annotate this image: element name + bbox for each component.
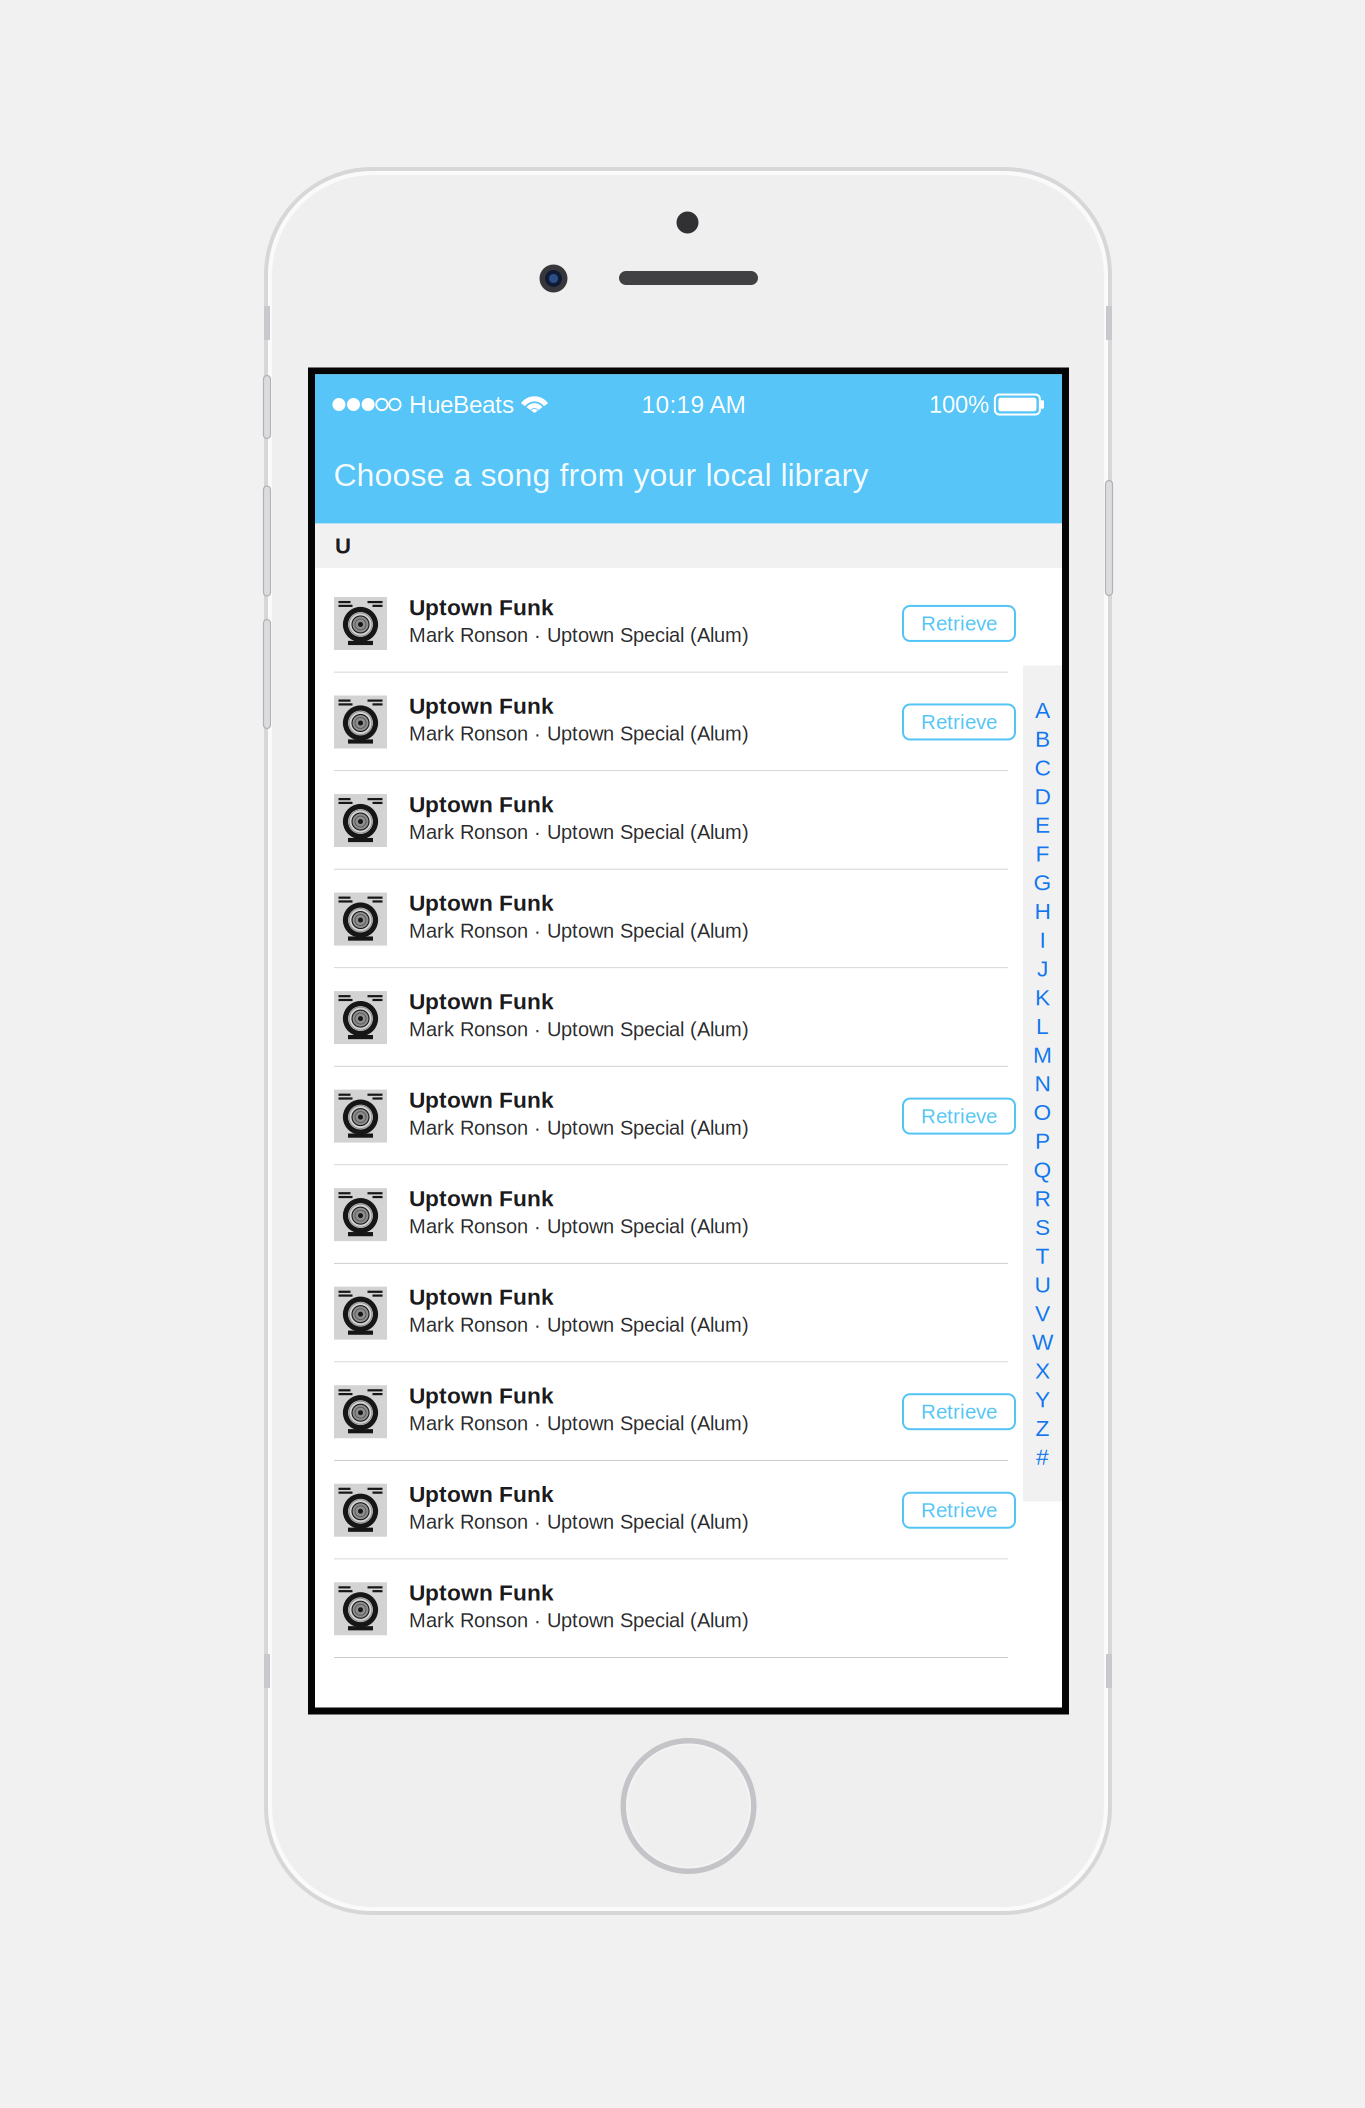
button[interactable]: Uptown Funk xyxy=(315,771,1062,870)
staticText: B xyxy=(1035,726,1050,751)
staticText: Mark Ronson · Uptown Special (Alum) xyxy=(409,1215,749,1237)
staticText: T xyxy=(1035,1243,1049,1268)
staticText: Choose a song from your local library xyxy=(333,457,868,493)
staticText: HueBeats xyxy=(409,391,514,418)
staticText: H xyxy=(1034,898,1050,924)
staticText: Retrieve xyxy=(921,711,997,733)
staticText: 10:19 AM xyxy=(641,391,745,418)
staticText: Mark Ronson · Uptown Special (Alum) xyxy=(409,1314,749,1336)
staticText: Mark Ronson · Uptown Special (Alum) xyxy=(409,1117,749,1139)
staticText: Q xyxy=(1033,1157,1051,1182)
button[interactable]: Alphabet index xyxy=(1023,665,1062,1501)
staticText: Retrieve xyxy=(921,612,997,635)
staticText: Retrieve xyxy=(921,1499,997,1522)
staticText: O xyxy=(1033,1100,1051,1125)
staticText: K xyxy=(1035,985,1050,1010)
staticText: Uptown Funk xyxy=(409,890,554,915)
button[interactable]: Uptown Funk xyxy=(315,870,1062,968)
staticText: Uptown Funk xyxy=(409,595,554,620)
staticText: N xyxy=(1034,1071,1050,1096)
button[interactable]: Uptown Funk xyxy=(315,673,1062,771)
staticText: E xyxy=(1035,812,1050,838)
button[interactable]: Retrieve xyxy=(903,704,1015,739)
staticText: Uptown Funk xyxy=(409,1186,554,1211)
button[interactable]: Retrieve xyxy=(903,1394,1015,1429)
staticText: Uptown Funk xyxy=(409,693,554,718)
button[interactable]: Uptown Funk xyxy=(315,1165,1062,1264)
staticText: # xyxy=(1036,1444,1049,1469)
button[interactable]: Uptown Funk xyxy=(315,1559,1062,1658)
staticText: Z xyxy=(1035,1415,1049,1441)
staticText: S xyxy=(1035,1214,1050,1240)
button[interactable]: Retrieve xyxy=(903,1493,1015,1528)
staticText: X xyxy=(1035,1358,1050,1383)
staticText: P xyxy=(1035,1128,1050,1154)
staticText: 100% xyxy=(929,391,989,418)
button[interactable]: Uptown Funk xyxy=(315,1067,1062,1165)
staticText: W xyxy=(1032,1329,1053,1355)
button[interactable]: Uptown Funk xyxy=(315,968,1062,1067)
button[interactable]: Retrieve xyxy=(903,1099,1015,1134)
staticText: U xyxy=(335,533,351,558)
staticText: Mark Ronson · Uptown Special (Alum) xyxy=(409,1412,749,1434)
staticText: F xyxy=(1035,841,1049,866)
staticText: Mark Ronson · Uptown Special (Alum) xyxy=(409,722,749,745)
staticText: Uptown Funk xyxy=(409,1580,554,1605)
staticText: I xyxy=(1039,927,1045,952)
staticText: Uptown Funk xyxy=(409,792,554,817)
staticText: Uptown Funk xyxy=(409,1383,554,1408)
staticText: Y xyxy=(1035,1387,1050,1412)
staticText: V xyxy=(1035,1301,1050,1326)
staticText: G xyxy=(1033,870,1051,895)
button[interactable]: Uptown Funk xyxy=(315,1461,1062,1559)
staticText: Retrieve xyxy=(921,1105,997,1127)
staticText: Uptown Funk xyxy=(409,1284,554,1310)
staticText: Retrieve xyxy=(921,1400,997,1423)
staticText: D xyxy=(1034,784,1050,809)
staticText: L xyxy=(1036,1013,1049,1039)
staticText: R xyxy=(1034,1186,1050,1211)
staticText: C xyxy=(1034,755,1050,780)
staticText: Uptown Funk xyxy=(409,1481,554,1507)
button[interactable]: Retrieve xyxy=(903,606,1015,641)
staticText: M xyxy=(1033,1042,1052,1067)
staticText: Uptown Funk xyxy=(409,989,554,1014)
staticText: A xyxy=(1035,697,1050,723)
staticText: Mark Ronson · Uptown Special (Alum) xyxy=(409,624,749,646)
staticText: Mark Ronson · Uptown Special (Alum) xyxy=(409,1511,749,1533)
staticText: Mark Ronson · Uptown Special (Alum) xyxy=(409,919,749,942)
staticText: U xyxy=(1034,1272,1050,1297)
button[interactable]: Uptown Funk xyxy=(315,1362,1062,1461)
staticText: J xyxy=(1037,956,1048,981)
staticText: Uptown Funk xyxy=(409,1087,554,1113)
staticText: Mark Ronson · Uptown Special (Alum) xyxy=(409,1609,749,1632)
staticText: Mark Ronson · Uptown Special (Alum) xyxy=(409,821,749,843)
button[interactable]: Uptown Funk xyxy=(315,574,1062,673)
button[interactable]: Uptown Funk xyxy=(315,1264,1062,1362)
staticText: Mark Ronson · Uptown Special (Alum) xyxy=(409,1018,749,1040)
